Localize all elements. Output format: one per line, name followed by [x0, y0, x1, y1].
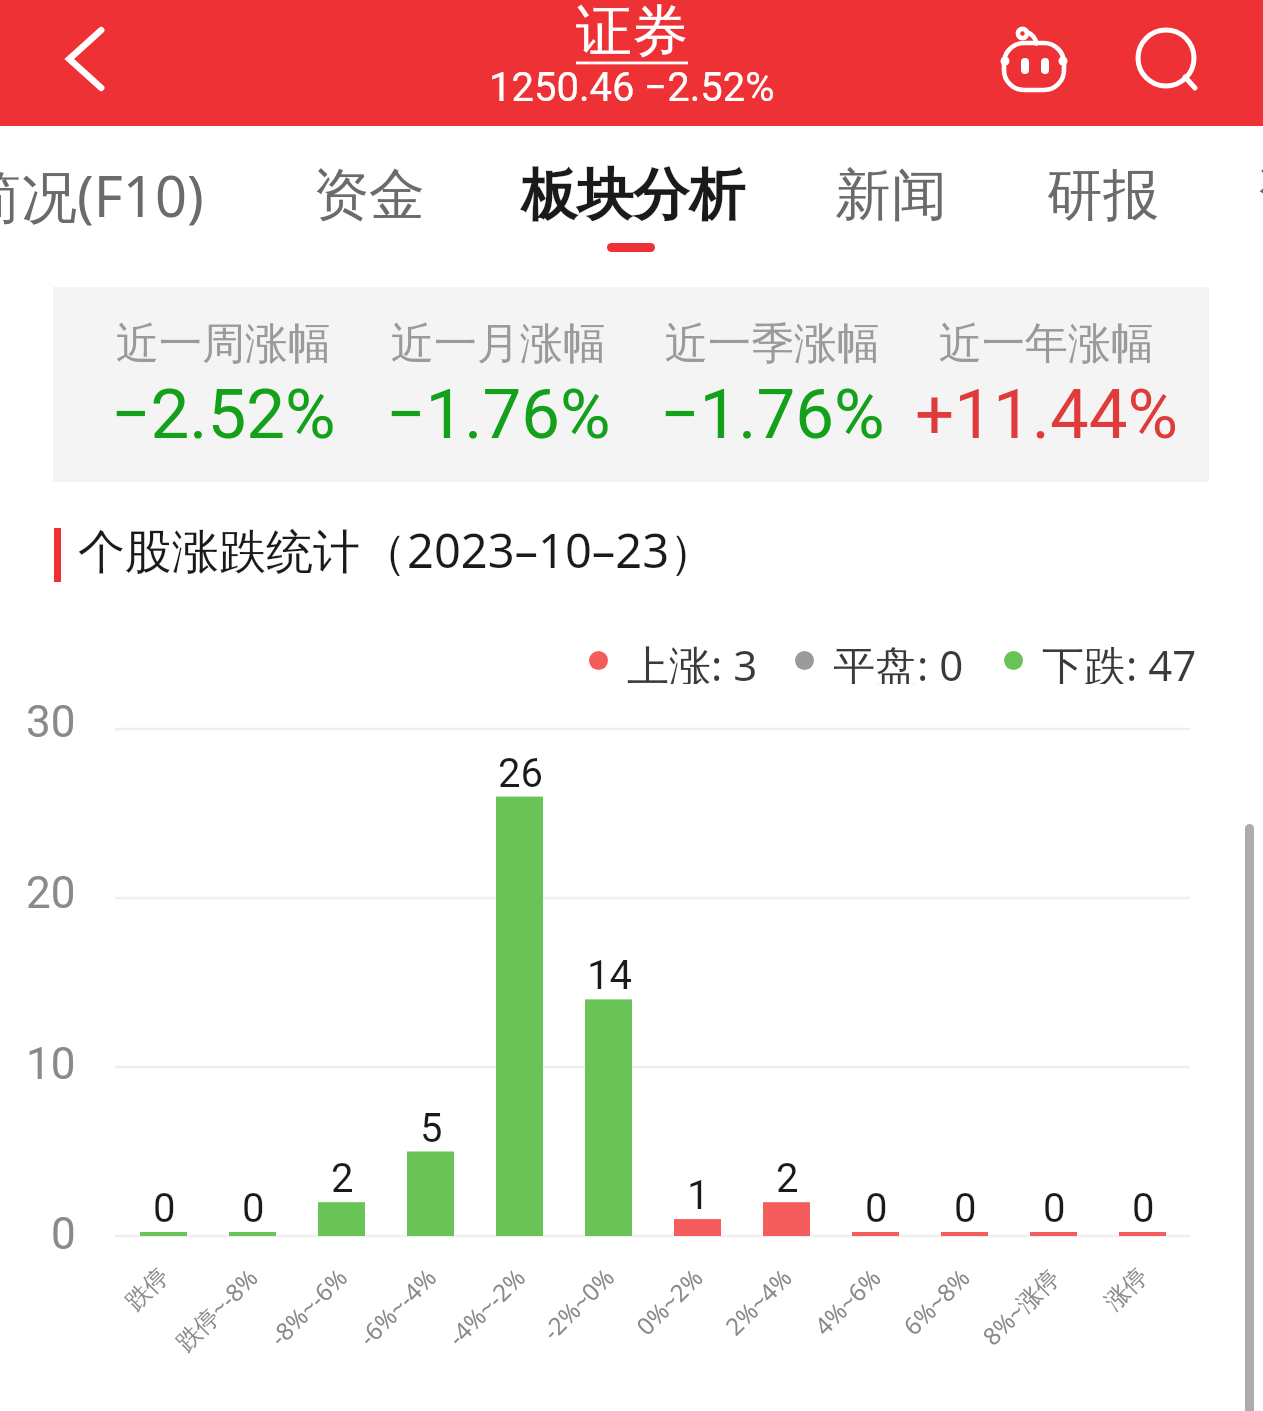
staticText: 资讯	[1256, 160, 1263, 231]
staticText: 跌停~-8%	[168, 1261, 265, 1358]
staticText: −1.76%	[386, 374, 611, 455]
staticText: -8%~-6%	[262, 1261, 354, 1353]
staticText: 上涨: 3	[627, 636, 758, 684]
staticText: 证券	[576, 0, 688, 67]
staticText: 26	[498, 750, 543, 797]
button[interactable]: 近一月涨幅	[338, 317, 658, 487]
button[interactable]: Back	[42, 19, 122, 99]
staticText: 1	[687, 1172, 710, 1219]
staticText: 0	[153, 1185, 176, 1232]
staticText: −1.76%	[660, 374, 885, 455]
button[interactable]: 近一季涨幅	[612, 317, 932, 487]
staticText: 平盘: 0	[833, 636, 964, 684]
staticText: 6%~8%	[896, 1261, 977, 1342]
button[interactable]: 研报	[903, 147, 1263, 243]
staticText: 个股涨跌统计（2023–10–23）	[78, 518, 717, 582]
staticText: 2	[331, 1155, 354, 1202]
button[interactable]: 平盘: 0	[795, 636, 964, 684]
button[interactable]: 上涨: 3	[589, 636, 758, 684]
staticText: 板块分析	[521, 160, 745, 231]
staticText: 简况(F10)	[0, 157, 204, 233]
button[interactable]: 近一年涨幅	[886, 317, 1206, 487]
staticText: 10	[26, 1038, 76, 1090]
button[interactable]: 板块分析	[433, 147, 833, 243]
staticText: 近一月涨幅	[391, 317, 606, 371]
staticText: 30	[26, 696, 76, 748]
button[interactable]: 资金	[169, 147, 569, 243]
staticText: 0	[1043, 1185, 1066, 1232]
button[interactable]: 近一周涨幅	[63, 317, 383, 487]
staticText: 1250.46 −2.52%	[489, 64, 775, 111]
staticText: 近一周涨幅	[116, 317, 331, 371]
staticText: 近一年涨幅	[939, 317, 1154, 371]
staticText: 0	[242, 1185, 265, 1232]
staticText: 涨停	[1098, 1261, 1154, 1317]
staticText: -4%~-2%	[440, 1261, 532, 1353]
staticText: −2.52%	[111, 374, 336, 455]
staticText: +11.44%	[915, 374, 1178, 455]
button[interactable]: Search	[1115, 13, 1219, 105]
staticText: 下跌: 47	[1042, 636, 1197, 684]
staticText: -6%~-4%	[351, 1261, 443, 1353]
staticText: 0	[1132, 1185, 1155, 1232]
staticText: 2	[776, 1155, 799, 1202]
staticText: 跌停	[119, 1261, 175, 1317]
staticText: 0	[865, 1185, 888, 1232]
staticText: 5	[420, 1105, 443, 1152]
staticText: 0	[51, 1208, 76, 1260]
staticText: 0%~2%	[629, 1261, 710, 1342]
staticText: 研报	[1047, 160, 1159, 231]
staticText: 14	[587, 952, 632, 999]
staticText: 8%~涨停	[975, 1261, 1066, 1352]
button[interactable]: 简况(F10)	[0, 147, 284, 243]
staticText: 新闻	[835, 160, 947, 231]
staticText: 0	[954, 1185, 977, 1232]
staticText: 近一季涨幅	[665, 317, 880, 371]
button[interactable]: 下跌: 47	[1004, 636, 1197, 684]
button[interactable]: AI assistant	[980, 12, 1088, 104]
staticText: 20	[26, 867, 76, 919]
staticText: 4%~6%	[807, 1261, 888, 1342]
staticText: -2%~0%	[535, 1261, 621, 1347]
staticText: 2%~4%	[718, 1261, 799, 1342]
staticText: 资金	[313, 160, 425, 231]
button[interactable]: 新闻	[691, 147, 1091, 243]
button[interactable]: 资讯	[1112, 147, 1263, 243]
